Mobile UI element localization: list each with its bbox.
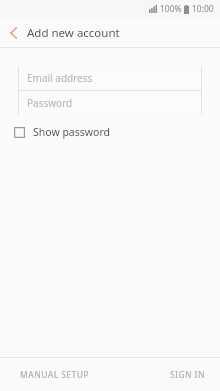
staticText: Show password xyxy=(33,125,110,139)
staticText: 100% xyxy=(160,3,182,15)
staticText: MANUAL SETUP xyxy=(20,369,89,381)
button[interactable]: MANUAL SETUP xyxy=(0,369,110,381)
staticText: Add new account xyxy=(27,25,120,41)
staticText: Email address xyxy=(27,71,93,85)
button[interactable]: Email address xyxy=(18,66,202,90)
button[interactable]: SIGN IN xyxy=(110,369,220,381)
button[interactable]: Show password xyxy=(12,122,118,142)
button[interactable]: Password xyxy=(18,91,202,115)
staticText: SIGN IN xyxy=(169,369,205,381)
staticText: 10:00 xyxy=(192,3,214,15)
button[interactable]: Back xyxy=(4,24,22,42)
staticText: Password xyxy=(27,96,73,110)
